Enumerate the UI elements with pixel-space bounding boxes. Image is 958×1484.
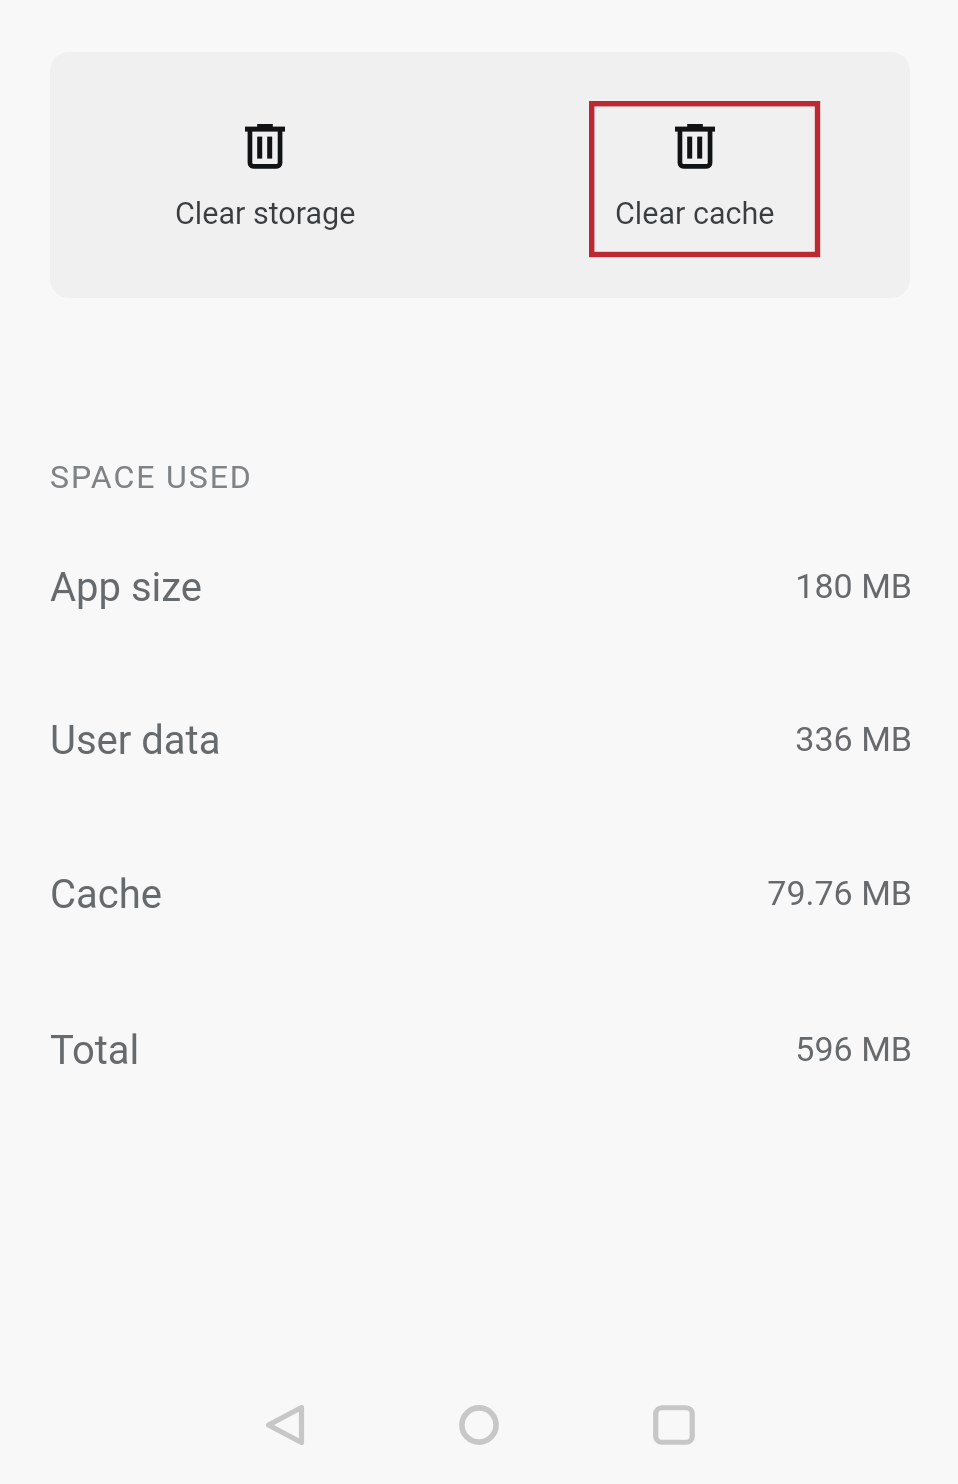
button[interactable]: Clear cache [480, 52, 910, 298]
button[interactable]: Clear storage [50, 52, 480, 298]
button[interactable]: Cache [0, 825, 958, 965]
button[interactable]: Total [0, 981, 958, 1121]
staticText: User data [50, 717, 221, 764]
staticText: 79.76 MB [0, 873, 912, 913]
staticText: 596 MB [0, 1029, 912, 1069]
button[interactable]: App size [0, 518, 958, 658]
button[interactable]: Recent apps [614, 1364, 734, 1484]
staticText: Cache [50, 871, 162, 918]
staticText: 180 MB [0, 566, 912, 606]
staticText: Clear storage [175, 196, 356, 232]
staticText: App size [50, 564, 203, 611]
button[interactable]: User data [0, 671, 958, 811]
staticText: Clear cache [615, 196, 775, 232]
staticText: Total [50, 1027, 140, 1074]
button[interactable]: Home [419, 1364, 539, 1484]
button[interactable]: Back [225, 1364, 345, 1484]
staticText: SPACE USED [50, 458, 253, 496]
staticText: 336 MB [0, 719, 912, 759]
